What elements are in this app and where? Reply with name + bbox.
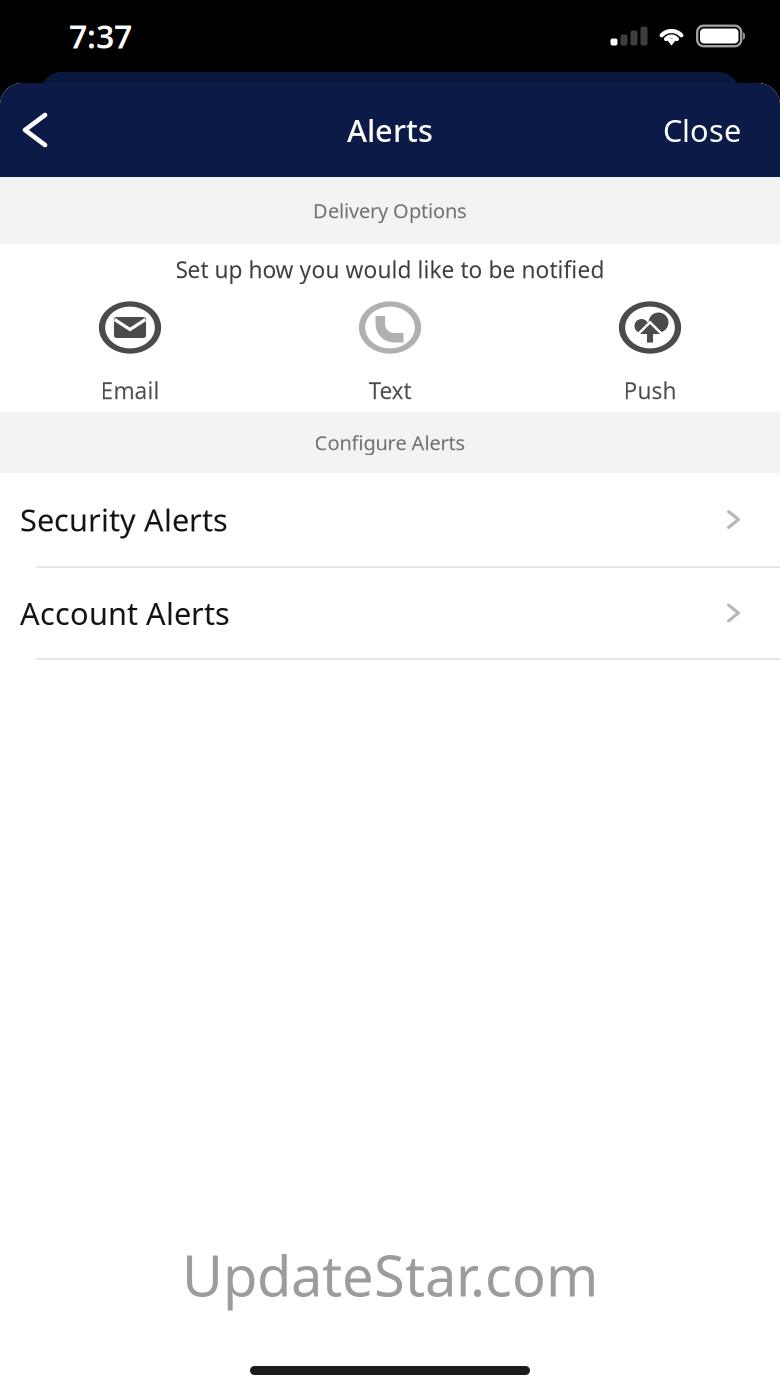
staticText: Account Alerts [20,593,230,633]
staticText: UpdateStar.com [182,1238,598,1312]
button[interactable]: Security Alerts [0,473,780,568]
staticText: Delivery Options [313,197,467,224]
staticText: Email [100,375,159,406]
staticText: Close [663,110,741,150]
button[interactable]: Email [0,296,260,406]
button[interactable]: Text [260,296,520,406]
staticText: Set up how you would like to be notified [175,254,604,284]
staticText: Text [368,375,411,406]
staticText: 7:37 [69,15,132,57]
staticText: Push [623,375,676,406]
button[interactable]: Back [0,92,66,168]
button[interactable]: Push [520,296,780,406]
staticText: Security Alerts [20,499,228,540]
button[interactable]: Account Alerts [0,568,780,660]
staticText: Configure Alerts [314,429,465,456]
staticText: Alerts [347,110,433,150]
button[interactable]: Close [645,91,780,169]
